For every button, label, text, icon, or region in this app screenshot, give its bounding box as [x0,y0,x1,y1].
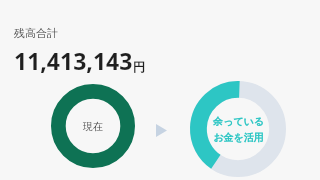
staticText: お金を活用 [213,131,264,144]
staticText: 残高合計 [14,26,58,40]
button[interactable]: 余っている [190,81,286,177]
staticText: 余っている [213,115,264,128]
button[interactable]: 次へ [153,120,169,140]
staticText: 現在 [83,120,103,133]
staticText: 11,413,143 [14,45,133,76]
staticText: 円 [133,59,145,74]
button[interactable]: 現在 [51,84,135,168]
